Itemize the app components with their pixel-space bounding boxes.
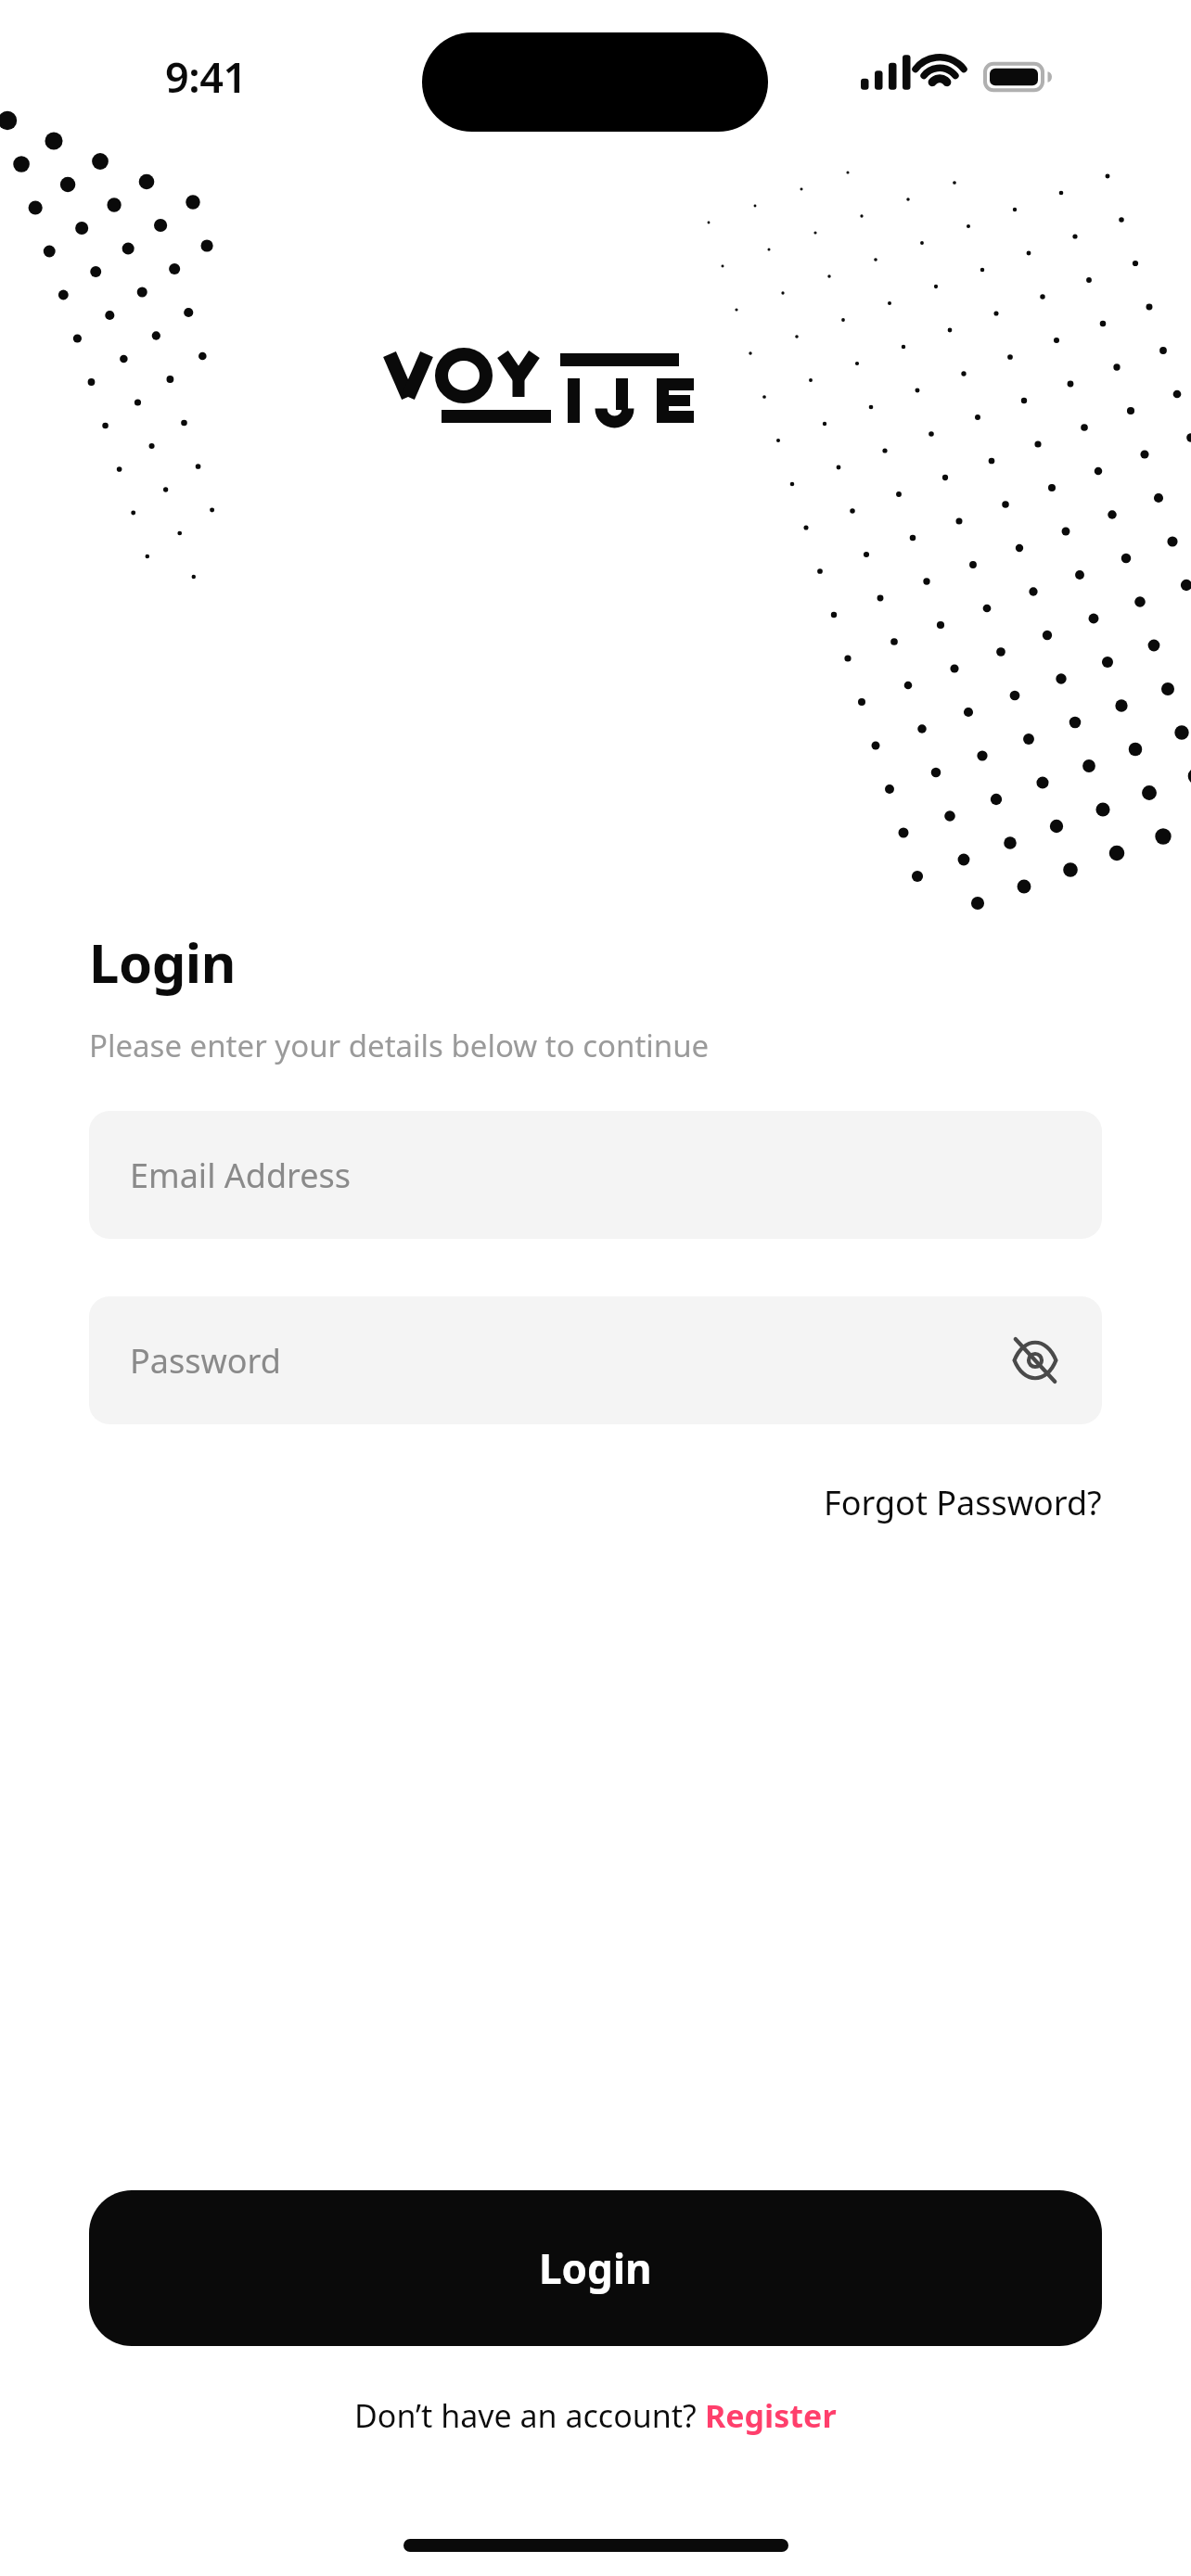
staticText: Register (705, 2394, 837, 2437)
button[interactable]: Show password (996, 1321, 1074, 1399)
button[interactable]: Email Address (89, 1111, 1102, 1239)
staticText: Email Address (130, 1153, 352, 1198)
staticText: 9:41 (165, 48, 247, 105)
button[interactable]: Forgot Password? (824, 1473, 1102, 1533)
staticText: Please enter your details below to conti… (89, 1025, 710, 1066)
staticText: Password (130, 1338, 281, 1384)
button[interactable]: Register (705, 2394, 837, 2437)
other: VOYIJE (378, 345, 824, 475)
button[interactable]: Login (89, 2190, 1102, 2346)
staticText: Login (89, 925, 236, 999)
button[interactable]: Password (89, 1296, 1102, 1424)
staticText: Login (539, 2240, 652, 2296)
staticText: Forgot Password? (824, 1480, 1102, 1525)
staticText: Don’t have an account? (354, 2394, 705, 2437)
